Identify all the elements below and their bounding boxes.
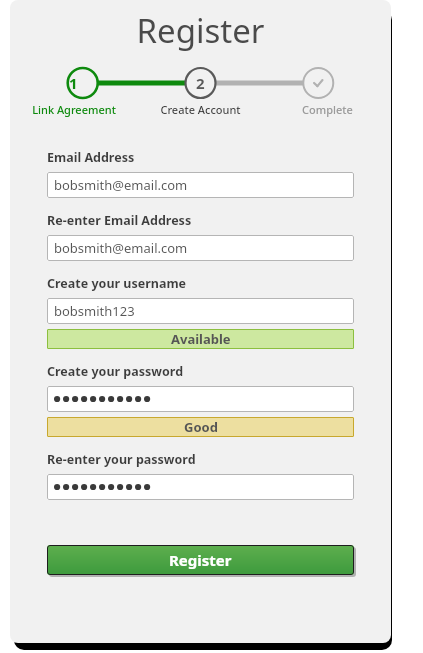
button[interactable]: Good <box>47 417 354 437</box>
button[interactable]: bobsmith123 <box>47 298 354 324</box>
staticText: Register <box>169 550 232 570</box>
staticText: Register <box>10 8 391 53</box>
button[interactable]: 2 <box>137 66 264 100</box>
staticText: 2 <box>196 73 205 93</box>
staticText: 1 <box>69 73 78 93</box>
staticText: bobsmith123 <box>54 302 135 320</box>
staticText: Link Agreement <box>32 102 116 117</box>
button[interactable]: Password field <box>47 474 354 500</box>
staticText: bobsmith@email.com <box>54 239 188 257</box>
staticText: Create Account <box>160 102 241 117</box>
staticText: Create your password <box>47 363 184 380</box>
staticText: Good <box>184 418 218 436</box>
staticText: Create your username <box>47 275 187 292</box>
staticText: Email Address <box>47 149 135 166</box>
button[interactable]: Available <box>47 329 354 349</box>
button[interactable]: bobsmith@email.com <box>47 172 354 198</box>
staticText: Available <box>171 330 231 348</box>
staticText: bobsmith@email.com <box>54 176 188 194</box>
button[interactable]: Complete step <box>264 66 391 100</box>
button[interactable]: 1 <box>10 66 137 100</box>
staticText: Re-enter Email Address <box>47 212 192 229</box>
button[interactable]: Register <box>47 545 354 575</box>
staticText: Complete <box>302 102 353 117</box>
button[interactable]: bobsmith@email.com <box>47 235 354 261</box>
button[interactable]: Password field <box>47 386 354 412</box>
staticText: Re-enter your password <box>47 451 196 468</box>
